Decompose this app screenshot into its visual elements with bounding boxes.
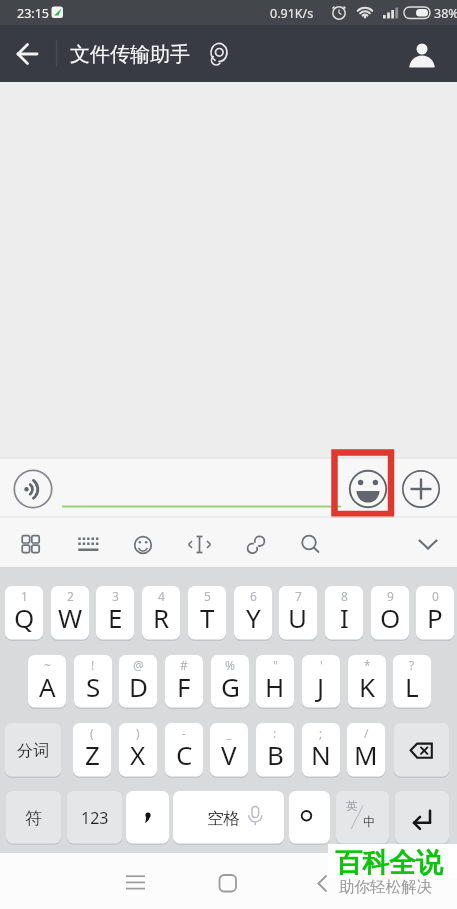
button[interactable]	[126, 791, 169, 845]
staticText: N	[311, 737, 331, 772]
staticText: 助你轻松解决	[339, 877, 432, 897]
staticText: E	[108, 600, 123, 635]
staticText: 文件传输助手	[70, 42, 190, 67]
staticText: G	[221, 669, 240, 704]
button[interactable]: :	[256, 723, 294, 778]
button[interactable]	[125, 526, 161, 562]
staticText: 7	[295, 588, 302, 604]
staticText: L	[405, 669, 419, 704]
button[interactable]: "	[256, 655, 294, 709]
staticText: F	[177, 669, 191, 704]
button[interactable]	[292, 526, 328, 562]
button[interactable]: 符	[6, 791, 61, 845]
staticText: C	[176, 737, 193, 772]
button[interactable]: %	[211, 655, 249, 709]
button[interactable]: 4	[142, 586, 180, 641]
button[interactable]	[238, 526, 274, 562]
staticText: 9	[387, 588, 394, 604]
staticText: W	[58, 600, 83, 635]
button[interactable]: *	[348, 655, 386, 709]
button[interactable]	[181, 526, 218, 562]
button[interactable]: /	[347, 723, 385, 778]
staticText: X	[130, 737, 146, 772]
button[interactable]: (	[73, 723, 111, 778]
staticText: -	[182, 725, 186, 741]
staticText: 0	[432, 588, 439, 604]
button[interactable]: 2	[51, 586, 89, 641]
staticText: 2	[67, 588, 74, 604]
button[interactable]	[10, 38, 44, 70]
button[interactable]	[117, 866, 153, 902]
button[interactable]: #	[165, 655, 203, 709]
button[interactable]: ?	[393, 655, 431, 709]
button[interactable]: 8	[325, 586, 363, 641]
staticText: H	[265, 669, 285, 704]
button[interactable]: -	[165, 723, 203, 778]
button[interactable]	[410, 526, 446, 562]
staticText: :	[273, 725, 277, 741]
staticText: 23:15	[17, 5, 49, 22]
button[interactable]	[210, 865, 246, 901]
staticText: ?	[409, 657, 415, 673]
button[interactable]: @	[119, 655, 157, 709]
staticText: I	[340, 600, 349, 635]
button[interactable]	[289, 791, 330, 845]
staticText: 0.91K/s	[270, 5, 314, 22]
staticText: Z	[85, 737, 100, 772]
button[interactable]	[13, 526, 49, 562]
button[interactable]: 英	[336, 791, 389, 845]
button[interactable]	[304, 865, 340, 901]
staticText: ;	[319, 725, 323, 741]
staticText: B	[267, 737, 284, 772]
staticText: 8	[341, 588, 348, 604]
staticText: 符	[25, 808, 42, 829]
button[interactable]	[401, 469, 441, 509]
staticText: Q	[14, 600, 35, 635]
button[interactable]	[405, 36, 441, 72]
button[interactable]: 7	[279, 586, 317, 641]
staticText: A	[39, 669, 56, 704]
staticText: O	[380, 600, 401, 635]
button[interactable]: 5	[188, 586, 226, 641]
staticText: 分词	[17, 741, 49, 761]
button[interactable]: 6	[234, 586, 272, 641]
button[interactable]: '	[302, 655, 340, 709]
staticText: /	[364, 725, 369, 741]
staticText: "	[273, 657, 278, 673]
staticText: P	[427, 600, 443, 635]
staticText: #	[180, 657, 188, 673]
staticText: 3	[112, 588, 119, 604]
button[interactable]	[395, 791, 449, 845]
staticText: J	[317, 669, 325, 704]
button[interactable]: 123	[67, 791, 122, 845]
staticText: 38%	[434, 5, 457, 22]
staticText: )	[136, 725, 140, 741]
button[interactable]: 1	[5, 586, 43, 641]
staticText: 4	[158, 588, 165, 604]
staticText: @	[133, 657, 144, 673]
staticText: D	[129, 669, 148, 704]
button[interactable]	[348, 469, 388, 509]
staticText: !	[91, 657, 95, 673]
button[interactable]: ~	[28, 655, 66, 709]
button[interactable]	[69, 526, 105, 562]
staticText: 1	[21, 588, 28, 604]
button[interactable]: !	[74, 655, 112, 709]
button[interactable]: )	[119, 723, 157, 778]
staticText: _	[226, 725, 232, 741]
staticText: V	[221, 737, 237, 772]
button[interactable]: 3	[96, 586, 134, 641]
button[interactable]: 分词	[5, 723, 61, 778]
button[interactable]: 9	[371, 586, 409, 641]
button[interactable]: 空格	[173, 791, 284, 845]
staticText: %	[225, 657, 235, 673]
button[interactable]: _	[210, 723, 248, 778]
staticText: T	[200, 600, 215, 635]
button[interactable]	[12, 468, 54, 510]
button[interactable]	[203, 38, 235, 70]
staticText: (	[90, 725, 94, 741]
button[interactable]	[394, 723, 449, 778]
button[interactable]: 0	[416, 586, 454, 641]
button[interactable]: ;	[302, 723, 340, 778]
staticText: 6	[250, 588, 257, 604]
